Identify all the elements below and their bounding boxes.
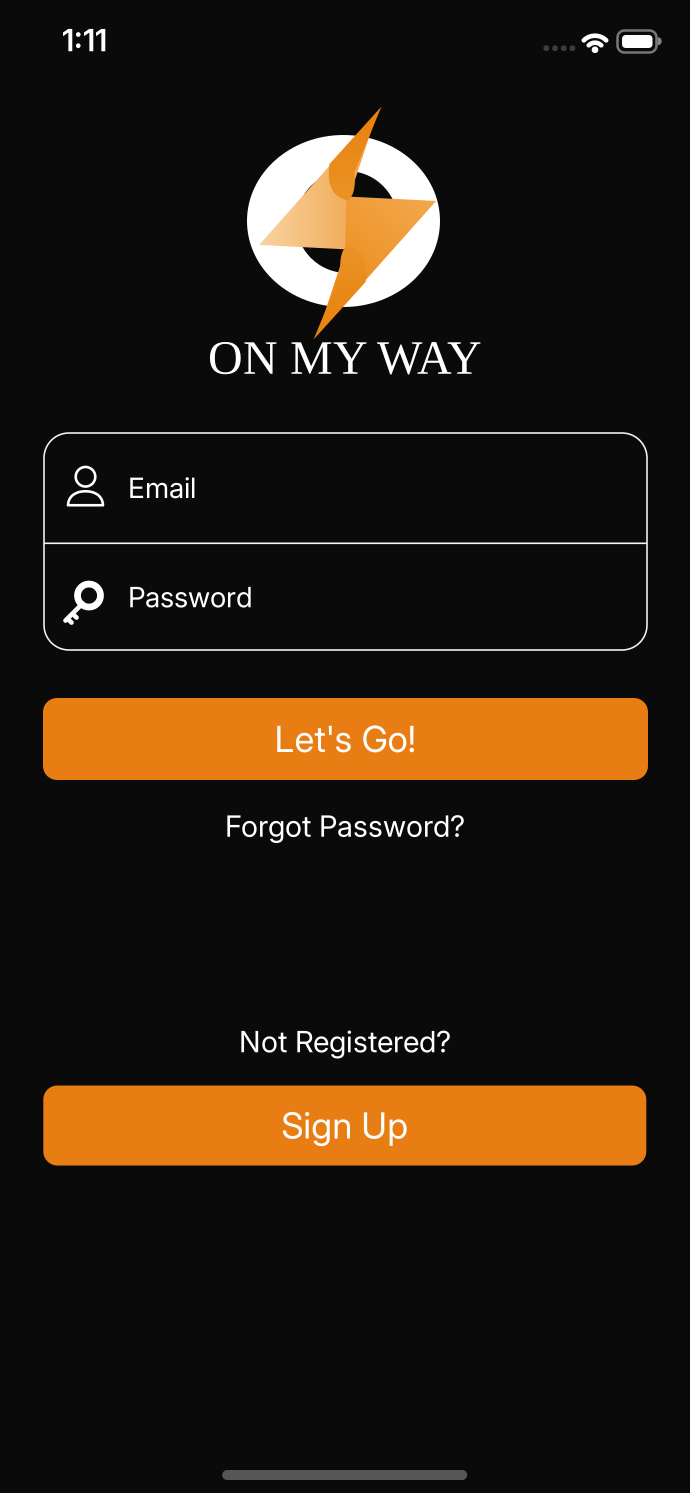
button[interactable]: Password xyxy=(44,544,647,650)
staticText: Email xyxy=(128,471,196,504)
staticText: Not Registered? xyxy=(239,1024,451,1059)
button[interactable]: Sign Up xyxy=(43,1085,646,1165)
staticText: Let's Go! xyxy=(274,718,416,760)
button[interactable]: Let's Go! xyxy=(43,698,648,780)
button[interactable]: Email xyxy=(44,433,647,542)
staticText: Forgot Password? xyxy=(225,809,465,843)
staticText: Sign Up xyxy=(281,1104,408,1147)
button[interactable]: Forgot Password? xyxy=(225,809,465,843)
staticText: ON MY WAY xyxy=(208,331,482,384)
staticText: 1:11 xyxy=(62,22,107,58)
staticText: Password xyxy=(128,580,253,613)
